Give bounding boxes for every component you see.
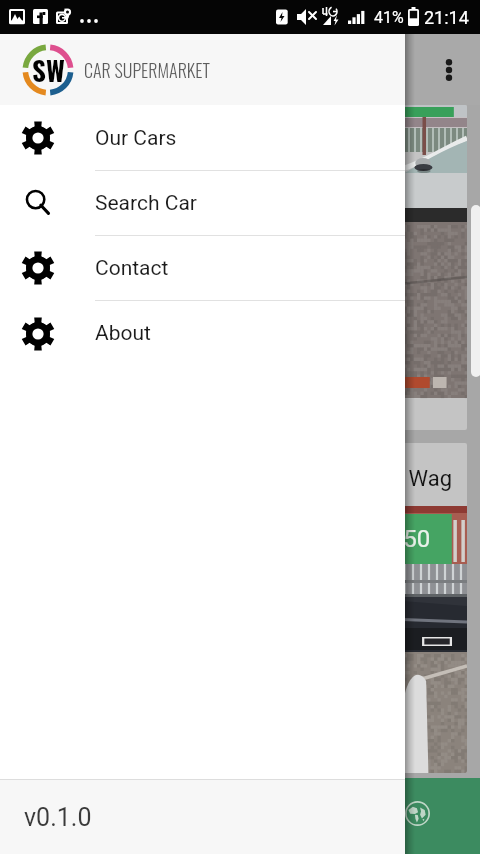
staticText: SW	[32, 50, 65, 90]
button[interactable]: Our Cars	[0, 106, 405, 171]
staticText: Contact	[95, 256, 169, 281]
staticText: CAR SUPERMARKET	[84, 57, 210, 84]
staticText: About	[95, 321, 151, 346]
button[interactable]: Contact	[0, 236, 405, 301]
staticText: 21:14	[424, 7, 469, 28]
button[interactable]: About	[0, 301, 405, 366]
staticText: Search Car	[95, 191, 197, 216]
staticText: v0.1.0	[24, 803, 92, 832]
staticText: £10,950	[344, 525, 431, 553]
staticText: Volkswagen Passat SE Variant Estate Wag	[38, 466, 453, 492]
button[interactable]: Web	[399, 795, 436, 832]
button[interactable]: More options	[430, 51, 468, 89]
button[interactable]	[13, 105, 467, 430]
button[interactable]: Volkswagen Passat SE Variant Estate Wag	[13, 443, 467, 773]
staticText: 41%	[374, 8, 404, 27]
button[interactable]: Search Car	[0, 171, 405, 236]
staticText: Our Cars	[95, 126, 177, 151]
